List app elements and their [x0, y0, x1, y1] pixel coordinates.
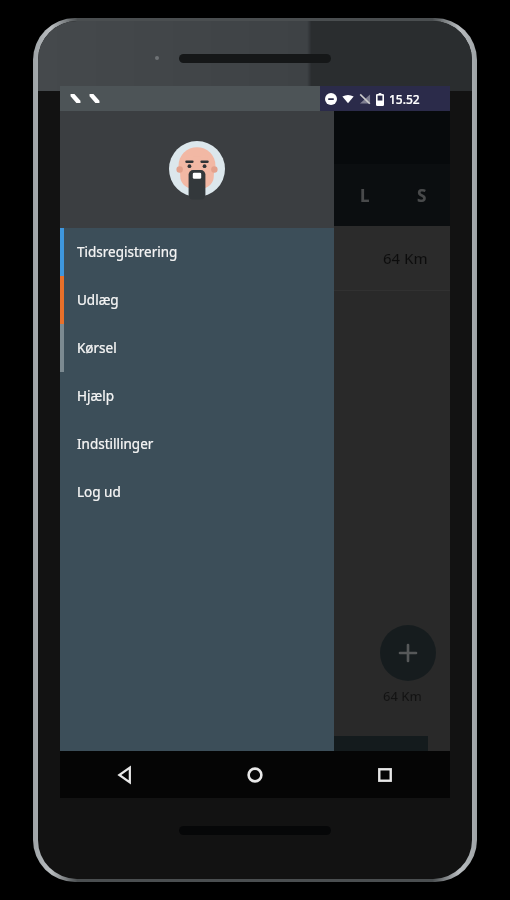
button[interactable]: Indstillinger [60, 420, 334, 468]
button[interactable]: Tidsregistrering [60, 228, 334, 276]
staticText: Tidsregistrering [77, 243, 178, 261]
button[interactable]: Add [380, 625, 436, 681]
button[interactable]: Kørsel [60, 324, 334, 372]
button[interactable]: Home [190, 751, 320, 798]
staticText: Indstillinger [77, 435, 154, 453]
button[interactable]: S [393, 164, 450, 226]
button[interactable]: Udlæg [60, 276, 334, 324]
button[interactable]: Hjælp [60, 372, 334, 420]
staticText: Log ud [77, 483, 121, 501]
button[interactable]: Back [60, 751, 190, 798]
button[interactable]: 64 Km [60, 226, 450, 290]
staticText: 15.52 [389, 91, 420, 107]
staticText: Kørsel [77, 339, 117, 357]
button[interactable]: Recents [320, 751, 450, 798]
button[interactable]: Log ud [60, 468, 334, 516]
button[interactable]: L [336, 164, 393, 226]
staticText: S [417, 184, 427, 207]
staticText: 64 Km [383, 687, 422, 705]
button[interactable] [60, 86, 334, 228]
staticText: L [360, 184, 370, 207]
staticText: Udlæg [77, 291, 119, 309]
staticText: Hjælp [77, 387, 114, 405]
button[interactable] [332, 736, 428, 768]
staticText: 64 Km [383, 248, 428, 268]
